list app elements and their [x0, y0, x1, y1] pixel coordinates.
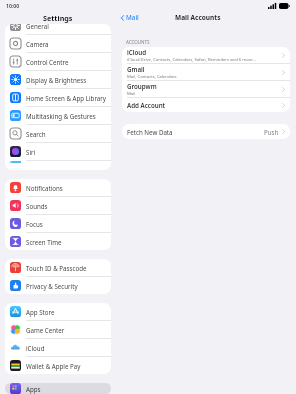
staticText: Game Center — [26, 326, 65, 334]
staticText: Wallet & Apple Pay — [26, 362, 81, 370]
staticText: Mail — [126, 13, 139, 22]
staticText: Gmail — [127, 65, 145, 73]
button[interactable]: Game Center — [5, 321, 111, 339]
staticText: Privacy & Security — [26, 282, 78, 290]
button[interactable]: App Store — [5, 303, 111, 321]
staticText: General — [26, 24, 49, 30]
button[interactable]: Display & Brightness — [5, 71, 111, 89]
staticText: Mail Accounts — [175, 13, 221, 22]
staticText: Groupwm — [127, 82, 157, 90]
staticText: Siri — [26, 148, 36, 156]
button[interactable]: Camera — [5, 35, 111, 53]
button[interactable]: Wallet & Apple Pay — [5, 357, 111, 374]
button[interactable]: Focus — [5, 215, 111, 233]
staticText: 10:00 — [6, 2, 20, 9]
staticText: Display & Brightness — [26, 76, 87, 84]
staticText: Notifications — [26, 184, 63, 192]
button[interactable]: Fetch New Data — [122, 124, 290, 139]
staticText: Touch ID & Passcode — [26, 264, 87, 272]
button[interactable]: Add Account — [122, 98, 290, 112]
button[interactable]: Search — [5, 125, 111, 143]
button[interactable]: Control Centre — [5, 53, 111, 71]
button[interactable]: iCloud — [122, 47, 290, 64]
other: Back to Mail — [121, 15, 124, 21]
button[interactable]: Wallpaper — [5, 161, 111, 163]
button[interactable]: Apps — [5, 383, 111, 394]
button[interactable]: General — [5, 24, 111, 35]
staticText: iCloud Drive, Contacts, Calendars, Safar… — [127, 57, 257, 63]
staticText: Focus — [26, 220, 43, 228]
button[interactable]: Multitasking & Gestures — [5, 107, 111, 125]
staticText: Settings — [43, 13, 73, 23]
staticText: Home Screen & App Library — [26, 94, 106, 102]
button[interactable]: Sounds — [5, 197, 111, 215]
staticText: Screen Time — [26, 238, 62, 246]
button[interactable]: Gmail — [122, 64, 290, 81]
staticText: Camera — [26, 40, 49, 48]
staticText: Apps — [26, 385, 41, 393]
staticText: iCloud — [26, 344, 45, 352]
staticText: Mail, Contacts, Calendars — [127, 74, 177, 80]
staticText: Mail — [127, 91, 136, 97]
button[interactable]: Siri — [5, 143, 111, 161]
button[interactable]: iCloud — [5, 339, 111, 357]
staticText: Add Account — [127, 101, 166, 109]
staticText: Multitasking & Gestures — [26, 112, 96, 120]
staticText: Fetch New Data — [127, 128, 173, 136]
staticText: Push — [264, 128, 279, 136]
button[interactable]: Touch ID & Passcode — [5, 259, 111, 277]
staticText: Control Centre — [26, 58, 69, 66]
button[interactable]: Home Screen & App Library — [5, 89, 111, 107]
button[interactable]: Groupwm — [122, 81, 290, 98]
button[interactable]: Back to Mail — [119, 11, 141, 24]
button[interactable]: Screen Time — [5, 233, 111, 250]
staticText: iCloud — [127, 48, 147, 56]
button[interactable]: Privacy & Security — [5, 277, 111, 294]
button[interactable]: Notifications — [5, 179, 111, 197]
staticText: Search — [26, 130, 46, 138]
staticText: Sounds — [26, 202, 48, 210]
staticText: ACCOUNTS — [126, 39, 150, 45]
staticText: App Store — [26, 308, 55, 316]
